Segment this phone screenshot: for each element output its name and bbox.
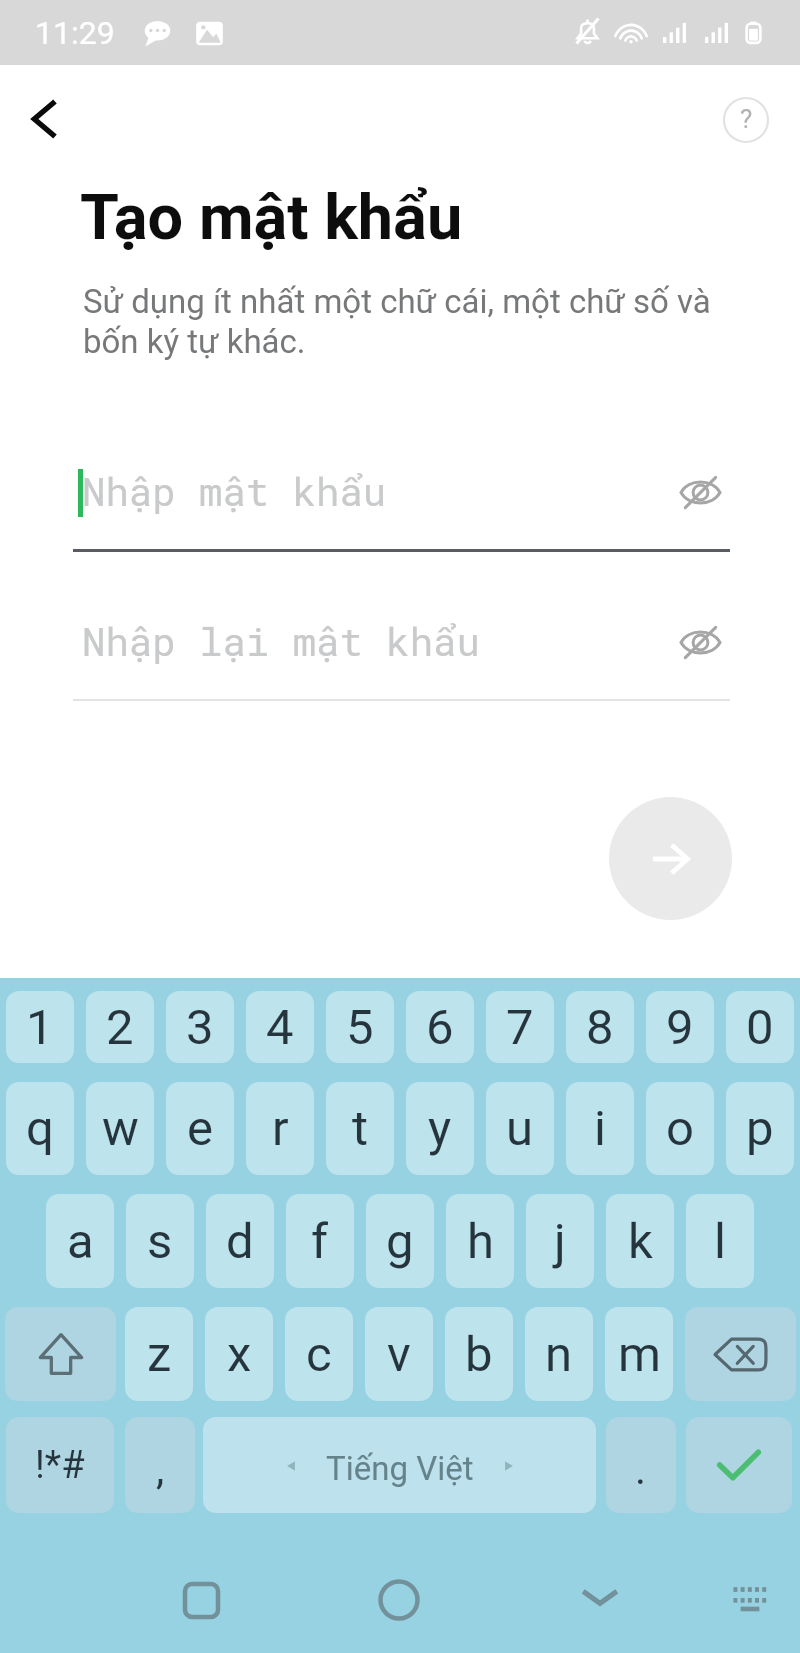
- button[interactable]: !*#: [6, 1417, 114, 1513]
- staticText: f: [311, 1213, 329, 1270]
- staticText: x: [227, 1326, 252, 1383]
- button[interactable]: Show password: [671, 463, 729, 521]
- staticText: w: [102, 1100, 139, 1157]
- button[interactable]: Done: [686, 1417, 792, 1513]
- button[interactable]: s: [126, 1194, 194, 1288]
- button[interactable]: ,: [125, 1417, 195, 1513]
- staticText: Sử dụng ít nhất một chữ cái, một chữ số …: [83, 282, 733, 361]
- button[interactable]: 0: [726, 991, 794, 1063]
- staticText: y: [428, 1100, 452, 1157]
- staticText: ,: [156, 1445, 165, 1494]
- button[interactable]: Help: [712, 86, 780, 154]
- staticText: 5: [346, 999, 374, 1056]
- button[interactable]: 9: [646, 991, 714, 1063]
- button[interactable]: h: [446, 1194, 514, 1288]
- staticText: 7: [506, 999, 534, 1056]
- staticText: r: [272, 1100, 289, 1157]
- button[interactable]: Space, Tiếng Việt: [203, 1417, 596, 1513]
- staticText: z: [147, 1326, 172, 1383]
- staticText: m: [618, 1326, 661, 1383]
- button[interactable]: .: [606, 1417, 676, 1513]
- button[interactable]: 8: [566, 991, 634, 1063]
- staticText: u: [506, 1100, 534, 1157]
- staticText: .: [635, 1445, 647, 1494]
- button[interactable]: k: [606, 1194, 674, 1288]
- button[interactable]: m: [605, 1307, 673, 1401]
- button[interactable]: 2: [86, 991, 154, 1063]
- staticText: Nhập lại mật khẩu: [82, 615, 480, 666]
- staticText: a: [67, 1213, 94, 1270]
- staticText: s: [147, 1213, 173, 1270]
- button[interactable]: Shift: [5, 1307, 116, 1401]
- button[interactable]: 4: [246, 991, 314, 1063]
- staticText: Tạo mật khẩu: [80, 181, 463, 255]
- staticText: 1: [26, 999, 54, 1056]
- button[interactable]: y: [406, 1082, 474, 1175]
- staticText: l: [714, 1213, 726, 1270]
- staticText: 4: [266, 999, 294, 1056]
- button[interactable]: c: [285, 1307, 353, 1401]
- button[interactable]: v: [365, 1307, 433, 1401]
- button[interactable]: 6: [406, 991, 474, 1063]
- button[interactable]: 7: [486, 991, 554, 1063]
- staticText: 3: [186, 999, 214, 1056]
- button[interactable]: n: [525, 1307, 593, 1401]
- staticText: k: [628, 1213, 653, 1270]
- staticText: n: [545, 1326, 573, 1383]
- button[interactable]: z: [125, 1307, 193, 1401]
- button[interactable]: w: [86, 1082, 154, 1175]
- staticText: 8: [586, 999, 614, 1056]
- button[interactable]: t: [326, 1082, 394, 1175]
- staticText: c: [306, 1326, 332, 1383]
- button[interactable]: 5: [326, 991, 394, 1063]
- button[interactable]: Show password: [671, 613, 729, 671]
- staticText: 11:29: [35, 14, 115, 52]
- button[interactable]: d: [206, 1194, 274, 1288]
- button[interactable]: l: [686, 1194, 754, 1288]
- button[interactable]: Nhập mật khẩu: [0, 462, 800, 556]
- button[interactable]: f: [286, 1194, 354, 1288]
- button[interactable]: g: [366, 1194, 434, 1288]
- staticText: i: [594, 1100, 606, 1157]
- button[interactable]: Home: [359, 1560, 439, 1640]
- button[interactable]: q: [6, 1082, 74, 1175]
- staticText: 2: [106, 999, 134, 1056]
- button[interactable]: o: [646, 1082, 714, 1175]
- staticText: h: [467, 1213, 494, 1270]
- button[interactable]: p: [726, 1082, 794, 1175]
- staticText: 9: [666, 999, 694, 1056]
- staticText: 6: [426, 999, 454, 1056]
- staticText: q: [26, 1100, 54, 1157]
- staticText: Nhập mật khẩu: [82, 465, 387, 516]
- staticText: ?: [740, 104, 753, 134]
- staticText: 0: [746, 999, 774, 1056]
- button[interactable]: Hide keyboard: [560, 1557, 640, 1637]
- staticText: !*#: [35, 1443, 85, 1488]
- button[interactable]: x: [205, 1307, 273, 1401]
- button[interactable]: r: [246, 1082, 314, 1175]
- button[interactable]: u: [486, 1082, 554, 1175]
- button[interactable]: Backspace: [685, 1307, 796, 1401]
- button[interactable]: Nhập lại mật khẩu: [0, 612, 800, 706]
- staticText: p: [746, 1100, 774, 1157]
- button[interactable]: Next: [609, 797, 732, 920]
- button[interactable]: b: [445, 1307, 513, 1401]
- staticText: t: [352, 1100, 369, 1157]
- button[interactable]: Switch keyboard: [710, 1558, 790, 1638]
- staticText: b: [465, 1326, 493, 1383]
- staticText: Tiếng Việt: [326, 1449, 474, 1488]
- button[interactable]: 3: [166, 991, 234, 1063]
- button[interactable]: e: [166, 1082, 234, 1175]
- button[interactable]: j: [526, 1194, 594, 1288]
- staticText: g: [386, 1213, 414, 1270]
- staticText: o: [666, 1100, 694, 1157]
- staticText: v: [387, 1326, 411, 1383]
- button[interactable]: i: [566, 1082, 634, 1175]
- staticText: e: [187, 1100, 213, 1157]
- staticText: j: [554, 1213, 566, 1270]
- button[interactable]: Recents: [161, 1560, 241, 1640]
- button[interactable]: 1: [6, 991, 74, 1063]
- button[interactable]: a: [46, 1194, 114, 1288]
- staticText: d: [226, 1213, 254, 1270]
- button[interactable]: Back: [1, 76, 87, 162]
